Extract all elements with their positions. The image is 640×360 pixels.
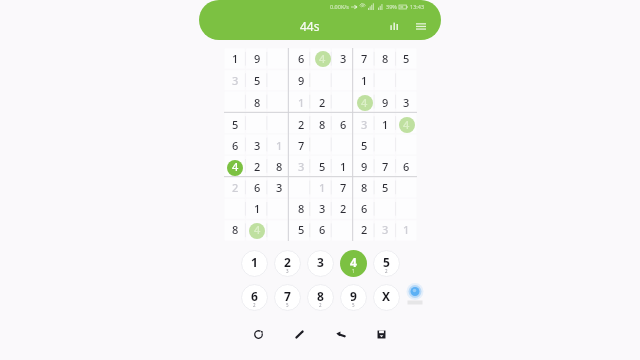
button[interactable] (268, 70, 290, 92)
button[interactable]: 5 (290, 220, 312, 241)
button[interactable]: 4 (396, 114, 417, 136)
button[interactable]: 1 (396, 220, 417, 241)
button[interactable]: 5 (224, 114, 246, 136)
button[interactable]: 1 (238, 247, 271, 280)
button[interactable]: 1 (375, 114, 396, 136)
button[interactable]: 2 (312, 92, 333, 114)
button[interactable]: 3 (290, 157, 312, 178)
button[interactable]: 6 (224, 136, 246, 157)
button[interactable]: 3 (354, 114, 375, 136)
button[interactable]: Pencil (279, 315, 320, 353)
button[interactable]: 5 (375, 178, 396, 199)
button[interactable]: 7 (375, 157, 396, 178)
button[interactable]: 1 (290, 92, 312, 114)
button[interactable]: 6 (354, 199, 375, 220)
button[interactable]: 5 (312, 157, 333, 178)
button[interactable]: 3 (304, 247, 337, 280)
button[interactable]: 7 (354, 48, 375, 70)
button[interactable]: 2 (333, 199, 354, 220)
button[interactable]: Save (361, 315, 402, 353)
button[interactable] (333, 220, 354, 241)
button[interactable]: 9 (354, 157, 375, 178)
button[interactable]: 1 (224, 48, 246, 70)
button[interactable]: 8 (246, 92, 268, 114)
button[interactable]: 9 (337, 281, 370, 314)
button[interactable]: 1 (354, 70, 375, 92)
button[interactable]: 8 (312, 114, 333, 136)
button[interactable]: 5 (396, 48, 417, 70)
button[interactable]: 6 (238, 281, 271, 314)
button[interactable]: 8 (304, 281, 337, 314)
button[interactable]: 2 (246, 157, 268, 178)
button[interactable]: 8 (354, 178, 375, 199)
button[interactable]: 9 (290, 70, 312, 92)
button[interactable]: X (370, 281, 403, 314)
button[interactable] (224, 92, 246, 114)
button[interactable]: 3 (246, 136, 268, 157)
button[interactable]: 5 (246, 70, 268, 92)
button[interactable]: Statistics (381, 12, 407, 40)
button[interactable]: 4 (312, 48, 333, 70)
button[interactable]: 3 (333, 48, 354, 70)
button[interactable]: 1 (268, 136, 290, 157)
button[interactable]: 2 (290, 114, 312, 136)
button[interactable]: 6 (290, 48, 312, 70)
button[interactable]: 2 (271, 247, 304, 280)
button[interactable]: 6 (246, 178, 268, 199)
button[interactable]: 7 (333, 178, 354, 199)
button[interactable]: 3 (268, 178, 290, 199)
button[interactable]: 4 (246, 220, 268, 241)
button[interactable]: 6 (333, 114, 354, 136)
button[interactable]: 9 (375, 92, 396, 114)
button[interactable] (268, 114, 290, 136)
button[interactable] (333, 92, 354, 114)
button[interactable]: 4 (224, 157, 246, 178)
button[interactable]: 1 (246, 199, 268, 220)
button[interactable]: 8 (224, 220, 246, 241)
button[interactable]: 4 (354, 92, 375, 114)
button[interactable]: 3 (312, 199, 333, 220)
button[interactable] (268, 48, 290, 70)
button[interactable] (268, 220, 290, 241)
button[interactable]: 1 (333, 157, 354, 178)
button[interactable]: Assistant (405, 280, 425, 304)
button[interactable]: 8 (268, 157, 290, 178)
button[interactable]: 4 (337, 247, 370, 280)
button[interactable]: 3 (396, 92, 417, 114)
staticText: 1 (232, 51, 239, 66)
button[interactable] (268, 199, 290, 220)
button[interactable]: Undo (320, 315, 361, 353)
button[interactable]: 3 (375, 220, 396, 241)
button[interactable]: Menu (407, 12, 434, 40)
button[interactable]: 3 (224, 70, 246, 92)
button[interactable]: 1 (312, 178, 333, 199)
staticText: 8 (361, 180, 368, 195)
button[interactable]: 5 (354, 136, 375, 157)
button[interactable]: Restart (238, 315, 279, 353)
button[interactable]: 2 (224, 178, 246, 199)
button[interactable]: 7 (271, 281, 304, 314)
button[interactable]: 5 (370, 247, 403, 280)
button[interactable]: 8 (375, 48, 396, 70)
button[interactable]: 2 (354, 220, 375, 241)
button[interactable] (333, 70, 354, 92)
button[interactable]: 8 (290, 199, 312, 220)
button[interactable]: 6 (312, 220, 333, 241)
button[interactable]: 6 (396, 157, 417, 178)
button[interactable]: 7 (290, 136, 312, 157)
button[interactable] (268, 92, 290, 114)
button[interactable] (333, 136, 354, 157)
button[interactable]: 9 (246, 48, 268, 70)
